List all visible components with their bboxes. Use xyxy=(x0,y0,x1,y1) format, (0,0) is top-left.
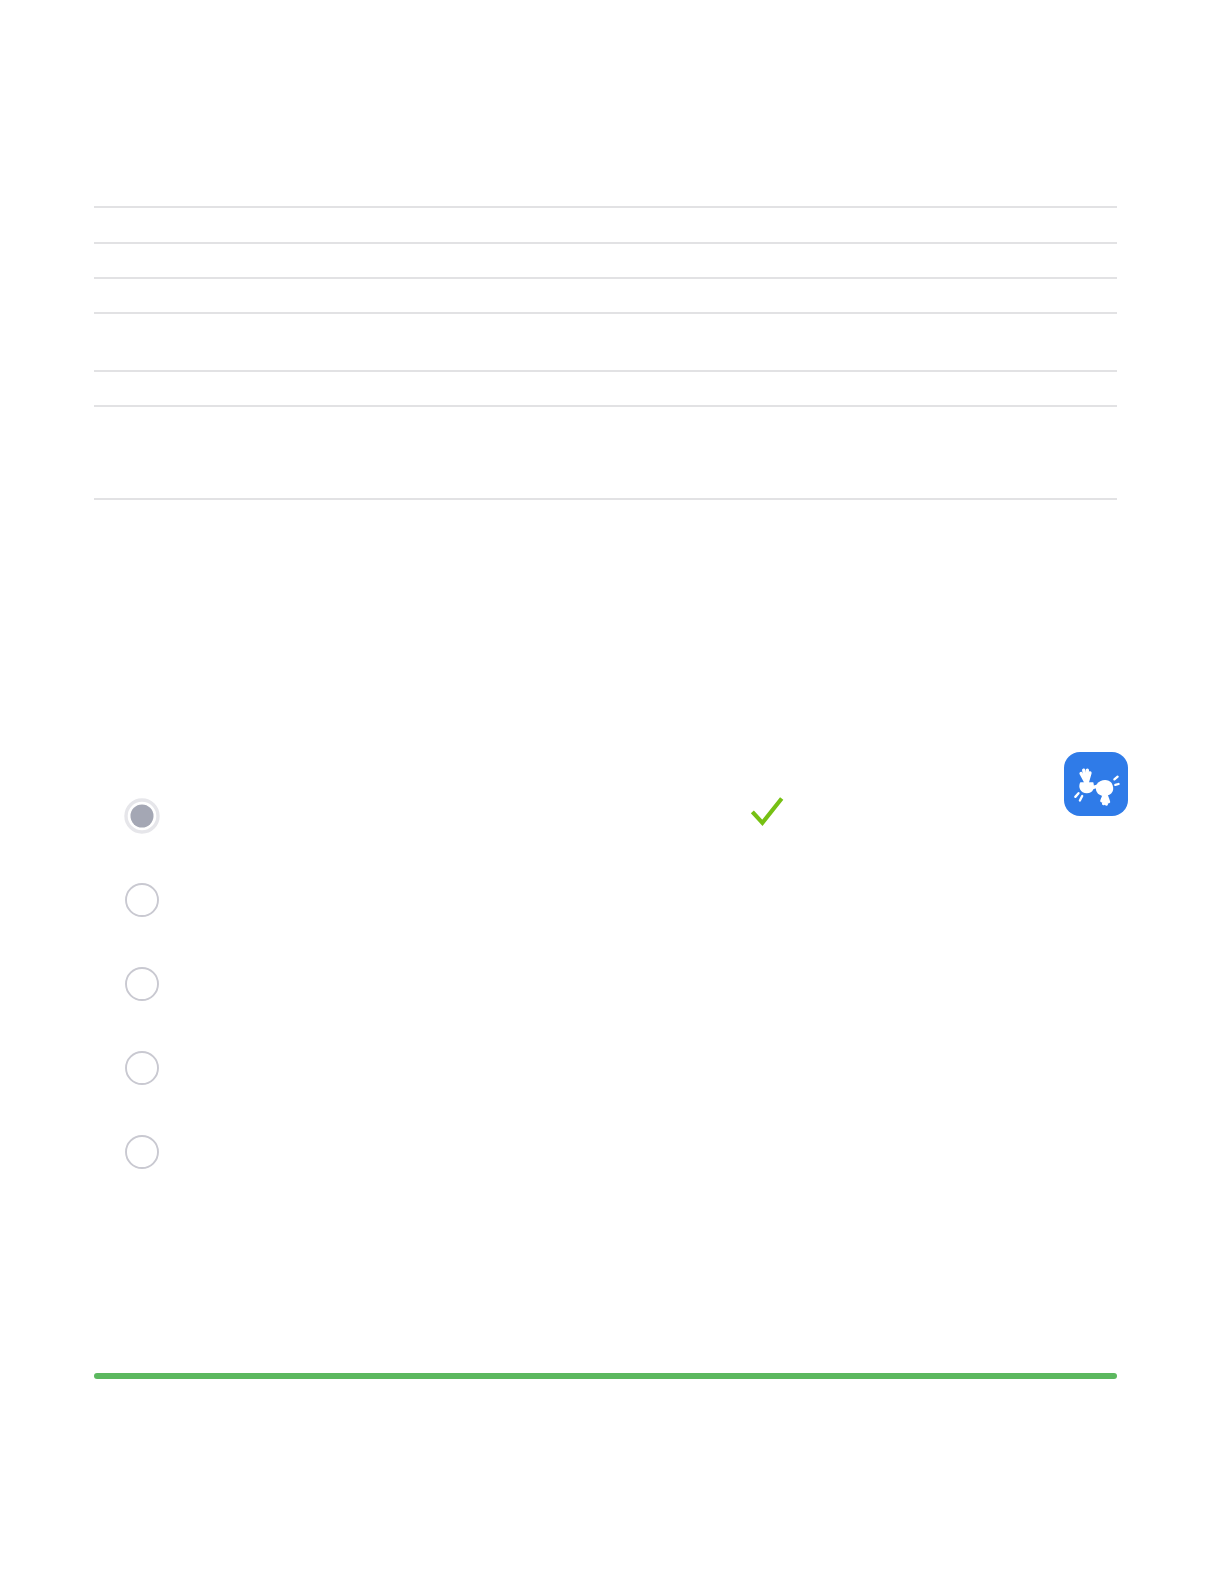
button[interactable]: Option 2 xyxy=(114,872,170,928)
button[interactable]: Option 4 xyxy=(114,1040,170,1096)
button[interactable]: Option 3 xyxy=(114,956,170,1012)
button[interactable]: Option 5 xyxy=(114,1124,170,1180)
button[interactable]: Correct xyxy=(740,786,792,838)
button[interactable]: Option 1 xyxy=(114,788,170,844)
button[interactable]: Sign language xyxy=(1064,752,1128,816)
